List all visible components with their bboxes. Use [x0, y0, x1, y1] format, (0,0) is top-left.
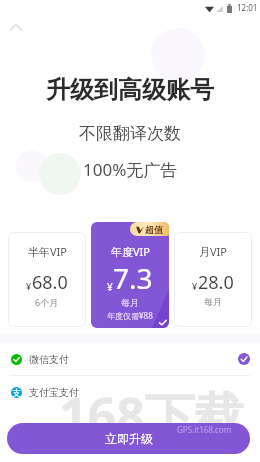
staticText: ¥ [26, 280, 32, 292]
staticText: 68.0 [32, 270, 68, 295]
staticText: GPS.it168.com [177, 424, 232, 435]
staticText: 28.0 [198, 270, 234, 295]
staticText: 168下载 [59, 381, 245, 449]
staticText: 升级到高级账号 [46, 75, 214, 105]
staticText: 不限翻译次数 [79, 123, 181, 144]
staticText: 100%无广告 [83, 158, 178, 181]
button[interactable]: 微信支付 [0, 343, 260, 375]
staticText: 月VIP [199, 244, 227, 259]
staticText: 每月 [204, 296, 222, 307]
button[interactable]: 月VIP [174, 232, 252, 327]
staticText: 半年VIP [28, 244, 67, 259]
staticText: ¥ [107, 280, 113, 294]
staticText: 微信支付 [29, 353, 69, 366]
button[interactable]: Back [4, 14, 28, 38]
staticText: ¥ [192, 280, 198, 292]
staticText: 支 [12, 387, 21, 398]
button[interactable]: 年度VIP [91, 222, 169, 328]
staticText: 12:01 [237, 2, 258, 13]
staticText: 年度VIP [111, 244, 150, 259]
staticText: 6个月 [35, 296, 59, 308]
staticText: 超值 [145, 224, 163, 235]
staticText: 7.3 [113, 259, 153, 297]
staticText: 每月 [121, 297, 139, 308]
staticText: 年度仅需¥88 [107, 310, 153, 321]
button[interactable]: 支 [0, 376, 260, 408]
button[interactable]: 立即升级 [7, 423, 250, 454]
staticText: 支付宝支付 [29, 386, 79, 399]
button[interactable]: 半年VIP [8, 232, 86, 327]
staticText: 立即升级 [105, 431, 153, 446]
